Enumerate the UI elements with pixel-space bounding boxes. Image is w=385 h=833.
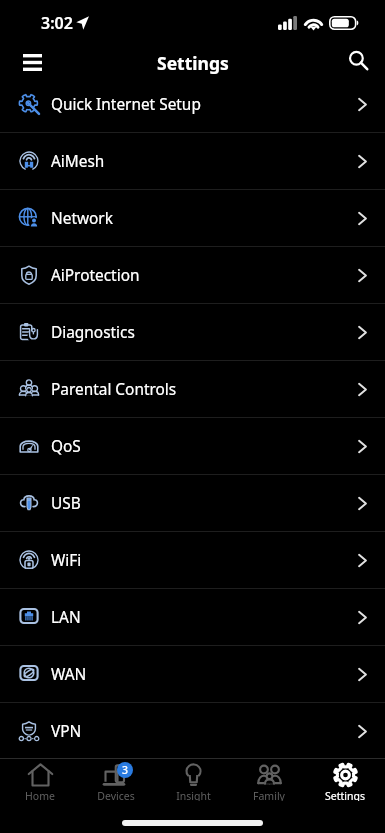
button[interactable]: AiProtection xyxy=(0,247,385,303)
button[interactable]: VPN xyxy=(0,703,385,759)
button[interactable]: WiFi xyxy=(0,532,385,588)
staticText: Home xyxy=(25,789,55,801)
staticText: Network xyxy=(51,208,113,229)
button[interactable]: WAN xyxy=(0,646,385,702)
button[interactable]: Settings xyxy=(309,759,381,801)
staticText: LAN xyxy=(51,607,81,628)
staticText: Settings xyxy=(325,789,365,801)
staticText: Family xyxy=(253,789,285,801)
staticText: Settings xyxy=(157,51,229,75)
button[interactable]: Family xyxy=(233,759,305,801)
button[interactable]: USB xyxy=(0,475,385,531)
button[interactable]: Parental Controls xyxy=(0,361,385,417)
button[interactable]: LAN xyxy=(0,589,385,645)
button[interactable]: Insight xyxy=(157,759,229,801)
button[interactable]: 3 xyxy=(80,759,152,801)
button[interactable]: Menu xyxy=(10,48,54,76)
button[interactable]: Network xyxy=(0,190,385,246)
staticText: 3 xyxy=(122,763,129,777)
staticText: WiFi xyxy=(51,550,82,571)
staticText: VPN xyxy=(51,721,82,742)
staticText: USB xyxy=(51,493,81,514)
staticText: Quick Internet Setup xyxy=(51,94,201,115)
staticText: WAN xyxy=(51,664,87,685)
button[interactable]: Quick Internet Setup xyxy=(0,76,385,132)
staticText: AiMesh xyxy=(51,151,105,172)
staticText: Devices xyxy=(97,789,135,801)
button[interactable]: AiMesh xyxy=(0,133,385,189)
staticText: Diagnostics xyxy=(51,322,135,343)
staticText: QoS xyxy=(51,436,81,457)
button[interactable]: Diagnostics xyxy=(0,304,385,360)
staticText: Parental Controls xyxy=(51,379,177,400)
staticText: AiProtection xyxy=(51,265,140,286)
button[interactable]: Home xyxy=(4,759,76,801)
button[interactable]: QoS xyxy=(0,418,385,474)
staticText: 3:02 xyxy=(41,12,73,34)
button[interactable]: Search xyxy=(336,45,380,76)
staticText: Insight xyxy=(176,789,211,801)
